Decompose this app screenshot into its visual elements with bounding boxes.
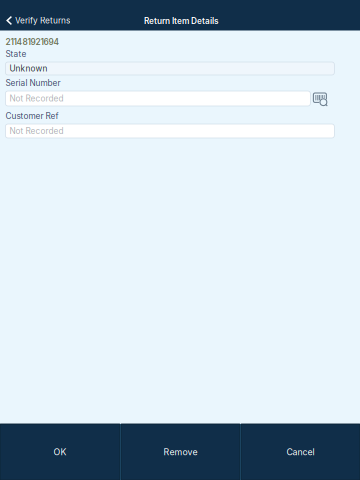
staticText: Not Recorded: [9, 126, 63, 136]
staticText: Return Item Details: [144, 16, 219, 26]
staticText: Cancel: [286, 447, 314, 457]
staticText: Not Recorded: [9, 93, 63, 103]
staticText: Verify Returns: [15, 15, 70, 25]
staticText: Customer Ref: [5, 111, 58, 121]
staticText: Serial Number: [5, 78, 60, 88]
staticText: Remove: [163, 447, 197, 457]
button[interactable]: Verify Returns: [0, 0, 76, 31]
staticText: Unknown: [9, 63, 47, 73]
button[interactable]: Cancel: [241, 424, 360, 480]
button[interactable]: OK: [0, 424, 120, 480]
staticText: OK: [53, 447, 66, 457]
button[interactable]: Remove: [121, 424, 240, 480]
staticText: State: [5, 49, 26, 59]
button[interactable]: Scan barcode: [313, 91, 330, 107]
staticText: 211481921694: [5, 37, 59, 47]
